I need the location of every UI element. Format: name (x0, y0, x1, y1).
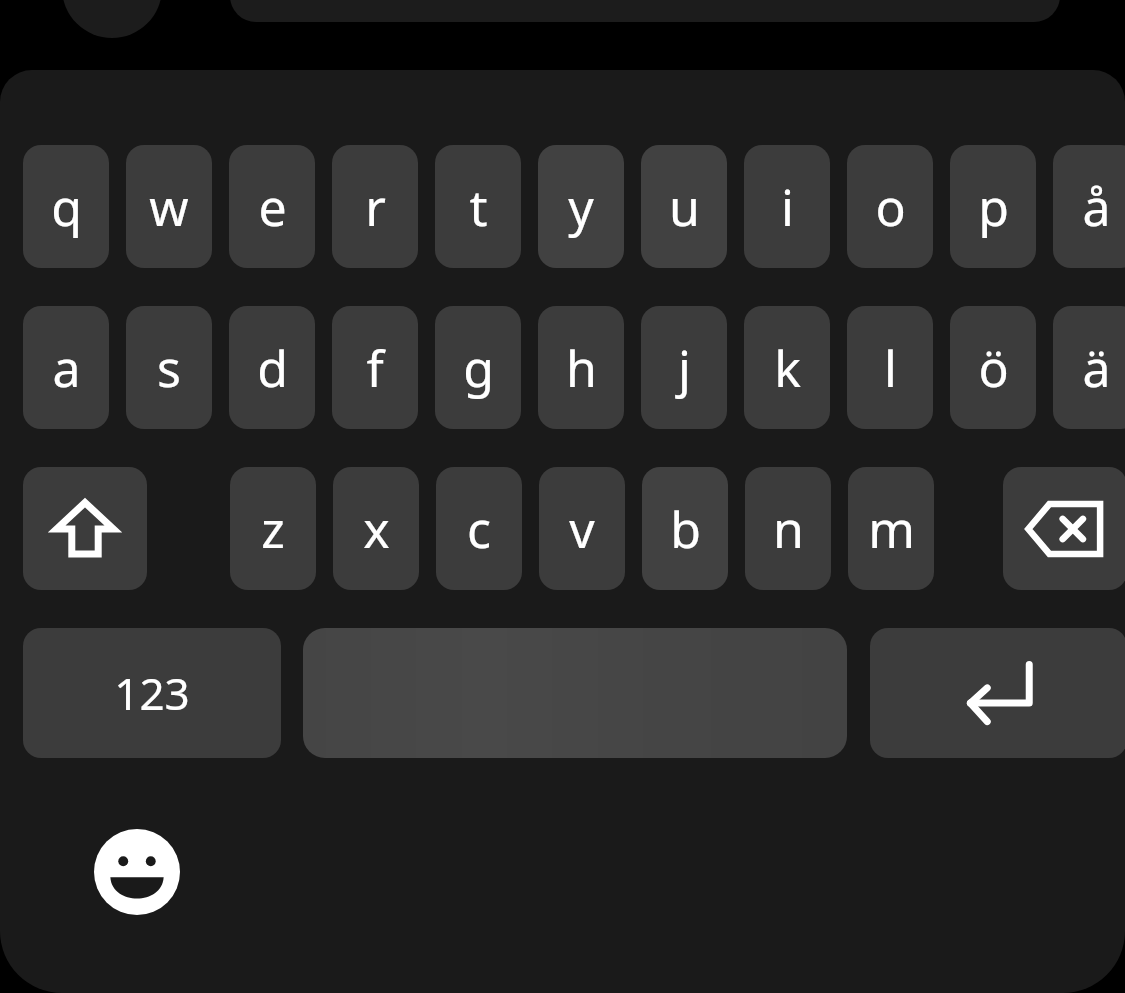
button[interactable]: r (332, 145, 418, 268)
staticText: o (875, 173, 906, 241)
staticText: å (1082, 173, 1111, 241)
staticText: 123 (114, 663, 190, 723)
staticText: q (51, 173, 82, 241)
button[interactable]: f (332, 306, 418, 429)
button[interactable]: w (126, 145, 212, 268)
button[interactable]: m (848, 467, 934, 590)
staticText: s (157, 334, 181, 402)
staticText: w (149, 173, 189, 241)
staticText: t (469, 173, 488, 241)
staticText: v (569, 495, 595, 563)
staticText: b (670, 495, 701, 563)
button[interactable]: q (23, 145, 109, 268)
button[interactable]: l (847, 306, 933, 429)
staticText: z (261, 495, 285, 563)
button[interactable]: 123 (23, 628, 281, 758)
button[interactable]: e (229, 145, 315, 268)
staticText: a (52, 334, 81, 402)
button[interactable]: Enter (870, 628, 1125, 758)
button[interactable]: y (538, 145, 624, 268)
staticText: c (467, 495, 491, 563)
button[interactable]: Backspace (1003, 467, 1125, 590)
staticText: ö (978, 334, 1009, 402)
button[interactable]: ä (1053, 306, 1125, 429)
staticText: f (366, 334, 384, 402)
staticText: l (884, 334, 897, 402)
button[interactable]: t (435, 145, 521, 268)
staticText: m (868, 495, 915, 563)
button[interactable]: Space (303, 628, 847, 758)
button[interactable]: h (538, 306, 624, 429)
staticText: h (566, 334, 597, 402)
staticText: u (669, 173, 700, 241)
button[interactable]: v (539, 467, 625, 590)
staticText: d (257, 334, 288, 402)
staticText: i (781, 173, 794, 241)
button[interactable]: j (641, 306, 727, 429)
staticText: j (678, 334, 691, 402)
button[interactable]: i (744, 145, 830, 268)
button[interactable]: b (642, 467, 728, 590)
button[interactable]: Emoji (87, 822, 187, 922)
button[interactable]: u (641, 145, 727, 268)
staticText: n (773, 495, 804, 563)
staticText: x (363, 495, 390, 563)
staticText: k (774, 334, 801, 402)
button[interactable]: c (436, 467, 522, 590)
button[interactable]: z (230, 467, 316, 590)
staticText: y (568, 173, 594, 241)
button[interactable]: p (950, 145, 1036, 268)
button[interactable]: s (126, 306, 212, 429)
staticText: g (463, 334, 494, 402)
button[interactable]: x (333, 467, 419, 590)
button[interactable]: d (229, 306, 315, 429)
staticText: e (258, 173, 287, 241)
button[interactable]: g (435, 306, 521, 429)
staticText: p (978, 173, 1009, 241)
button[interactable]: k (744, 306, 830, 429)
button[interactable]: n (745, 467, 831, 590)
staticText: r (365, 173, 386, 241)
button[interactable]: Shift (23, 467, 147, 590)
button[interactable]: å (1053, 145, 1125, 268)
button[interactable]: o (847, 145, 933, 268)
button[interactable]: ö (950, 306, 1036, 429)
staticText: ä (1082, 334, 1111, 402)
button[interactable]: a (23, 306, 109, 429)
